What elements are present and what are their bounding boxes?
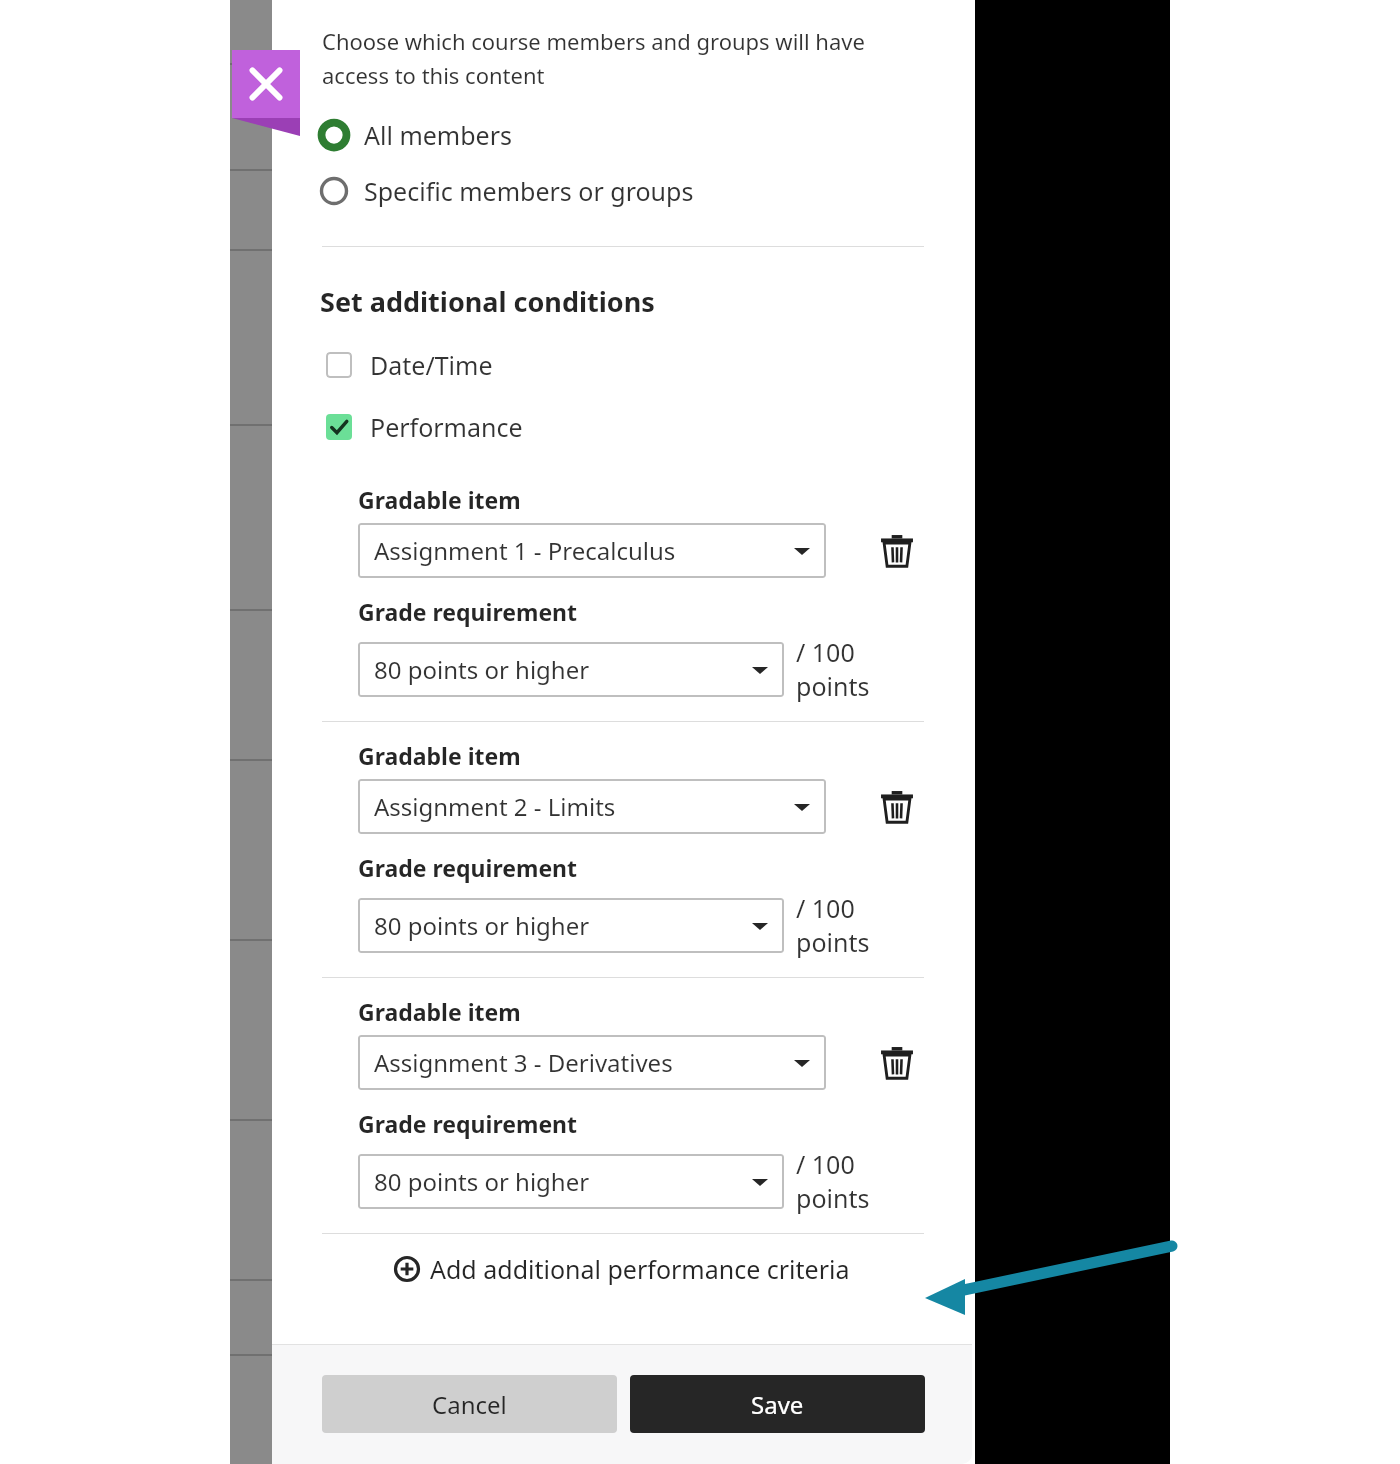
staticText: Choose which course members and groups w… [322,26,922,90]
staticText: 80 points or higher [374,909,752,942]
staticText: Gradable item [358,740,521,771]
button[interactable]: Date/Time [272,348,972,382]
button[interactable]: Delete criteria [874,528,920,574]
staticText: Grade requirement [358,596,578,627]
staticText: Assignment 1 - Precalculus [374,534,794,567]
button[interactable]: 80 points or higher [358,1154,784,1209]
staticText: All members [364,118,513,152]
staticText: Set additional conditions [320,283,655,320]
staticText: / 100 points [796,891,924,959]
staticText: Performance [370,410,523,444]
button[interactable]: Delete criteria [874,1040,920,1086]
staticText: Date/Time [370,348,493,382]
button[interactable]: Performance [272,410,972,444]
button[interactable]: All members [272,112,972,158]
staticText: Save [751,1388,804,1421]
button[interactable]: Delete criteria [874,784,920,830]
staticText: Grade requirement [358,1108,578,1139]
staticText: / 100 points [796,1147,924,1215]
staticText: Cancel [432,1388,507,1421]
staticText: 80 points or higher [374,653,752,686]
button[interactable]: Assignment 1 - Precalculus [358,523,826,578]
staticText: Gradable item [358,484,521,515]
button[interactable]: Assignment 3 - Derivatives [358,1035,826,1090]
button[interactable]: Assignment 2 - Limits [358,779,826,834]
staticText: Specific members or groups [364,174,694,208]
button[interactable]: Specific members or groups [272,168,972,214]
button[interactable]: 80 points or higher [358,898,784,953]
staticText: Grade requirement [358,852,578,883]
staticText: Add additional performance criteria [430,1252,850,1286]
button[interactable]: Save [630,1375,925,1433]
button[interactable]: Close [232,50,300,136]
button[interactable]: 80 points or higher [358,642,784,697]
staticText: 80 points or higher [374,1165,752,1198]
button[interactable]: Add additional performance criteria [272,1234,972,1304]
staticText: Assignment 2 - Limits [374,790,794,823]
staticText: Gradable item [358,996,521,1027]
button[interactable]: Cancel [322,1375,617,1433]
staticText: / 100 points [796,635,924,703]
staticText: Assignment 3 - Derivatives [374,1046,794,1079]
